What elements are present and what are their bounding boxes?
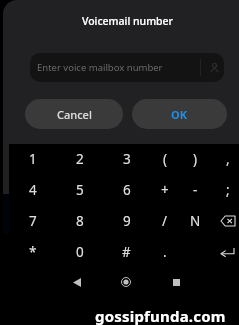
button[interactable]: ) (180, 144, 210, 174)
staticText: 4 (29, 181, 37, 199)
button[interactable]: # (103, 236, 150, 267)
button[interactable]: OK (132, 99, 227, 129)
button[interactable]: Backspace (210, 205, 239, 236)
button[interactable]: Enter (210, 236, 239, 267)
staticText: Enter voice mailbox number (37, 61, 163, 74)
button[interactable]: * (9, 236, 56, 267)
button[interactable]: . (150, 236, 180, 267)
button[interactable]: 2 (56, 144, 103, 174)
staticText: 5 (76, 181, 84, 199)
staticText: + (161, 181, 169, 199)
staticText: gossipfunda.com (95, 306, 226, 325)
button[interactable]: 7 (9, 205, 56, 236)
other: Backspace (221, 216, 235, 226)
staticText: 7 (29, 212, 37, 230)
staticText: 3 (123, 150, 131, 168)
staticText: # (122, 243, 131, 261)
staticText: 8 (76, 212, 84, 230)
button[interactable]: ( (150, 144, 180, 174)
staticText: 1 (29, 150, 37, 168)
button[interactable]: / (150, 205, 180, 236)
button[interactable]: 3 (103, 144, 150, 174)
button[interactable]: Back (62, 267, 92, 297)
other: Choose contact (208, 61, 221, 74)
button[interactable]: Home (111, 267, 141, 297)
button[interactable]: N (180, 205, 210, 236)
button[interactable]: 4 (9, 174, 56, 205)
button[interactable]: 0 (56, 236, 103, 267)
button[interactable]: 5 (56, 174, 103, 205)
button[interactable]: 9 (103, 205, 150, 236)
button[interactable]: 1 (9, 144, 56, 174)
staticText: Cancel (57, 107, 92, 122)
button[interactable]: , (210, 144, 239, 174)
staticText: , (226, 150, 230, 168)
button[interactable]: Enter voice mailbox number (30, 53, 224, 82)
button[interactable]: + (150, 174, 180, 205)
staticText: - (193, 181, 198, 199)
staticText: 0 (76, 243, 84, 261)
button[interactable]: ; (210, 174, 239, 205)
button[interactable]: 8 (56, 205, 103, 236)
staticText: / (162, 212, 168, 230)
button[interactable]: Recents (161, 267, 191, 297)
staticText: ; (226, 181, 230, 199)
staticText: OK (171, 107, 188, 122)
staticText: N (190, 212, 201, 230)
staticText: 6 (123, 181, 131, 199)
staticText: . (163, 243, 167, 261)
button[interactable]: - (180, 174, 210, 205)
staticText: ( (163, 150, 168, 168)
staticText: ) (193, 150, 198, 168)
other: Enter (221, 248, 234, 256)
staticText: 2 (76, 150, 84, 168)
staticText: 9 (123, 212, 131, 230)
button[interactable]: Cancel (25, 99, 123, 129)
staticText: Voicemail number (8, 14, 239, 28)
button[interactable]: 6 (103, 174, 150, 205)
staticText: * (29, 243, 37, 261)
